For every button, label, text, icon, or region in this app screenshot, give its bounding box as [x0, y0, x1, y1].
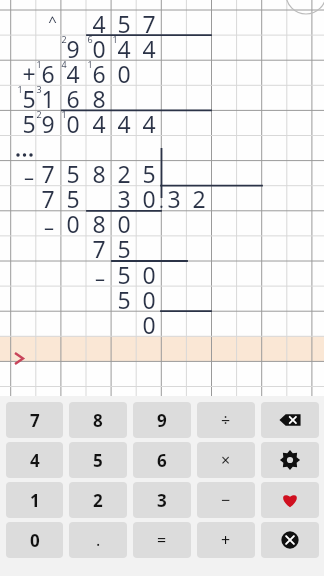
button[interactable]: ÷: [197, 402, 255, 438]
staticText: –: [24, 164, 34, 191]
staticText: 2: [117, 158, 131, 188]
button[interactable]: Settings: [261, 442, 319, 478]
staticText: 2: [36, 108, 42, 120]
staticText: +: [221, 529, 231, 551]
staticText: 4: [117, 33, 131, 63]
staticText: 6: [92, 58, 106, 88]
staticText: 4: [30, 449, 40, 472]
staticText: 3: [167, 183, 181, 213]
button[interactable]: 6: [133, 442, 191, 478]
staticText: =: [157, 529, 167, 551]
staticText: 1: [36, 58, 42, 70]
button[interactable]: Close keyboard: [261, 522, 319, 558]
staticText: 7: [30, 409, 40, 432]
button[interactable]: More options: [14, 147, 34, 163]
staticText: 5: [66, 183, 80, 213]
staticText: 0: [142, 183, 156, 213]
staticText: 6: [157, 449, 167, 472]
button[interactable]: 2: [69, 482, 127, 518]
staticText: 2: [93, 489, 103, 512]
staticText: 8: [92, 158, 106, 188]
button[interactable]: =: [133, 522, 191, 558]
staticText: 6: [41, 58, 55, 88]
staticText: 4: [61, 58, 67, 70]
button[interactable]: 8: [69, 402, 127, 438]
staticText: 2: [61, 33, 67, 45]
staticText: 0: [117, 58, 131, 88]
staticText: 0: [117, 208, 131, 238]
staticText: ^: [48, 11, 57, 31]
button[interactable]: .: [69, 522, 127, 558]
staticText: 3: [36, 83, 42, 95]
staticText: 1: [61, 108, 67, 120]
staticText: 1: [41, 83, 55, 113]
staticText: 0: [30, 529, 40, 552]
staticText: 8: [92, 208, 106, 238]
button[interactable]: 9: [133, 402, 191, 438]
staticText: 4: [66, 58, 80, 88]
staticText: 5: [22, 83, 36, 113]
staticText: 3: [117, 183, 131, 213]
staticText: 5: [22, 108, 36, 138]
staticText: ÷: [221, 409, 231, 431]
staticText: 8: [92, 83, 106, 113]
staticText: 5: [66, 158, 80, 188]
button[interactable]: 5: [69, 442, 127, 478]
staticText: 7: [41, 183, 55, 213]
staticText: 0: [66, 208, 80, 238]
staticText: +: [22, 58, 36, 88]
staticText: 0: [142, 259, 156, 289]
staticText: 0: [142, 284, 156, 314]
staticText: 4: [92, 108, 106, 138]
staticText: 4: [142, 108, 156, 138]
button[interactable]: ×: [197, 442, 255, 478]
button[interactable]: +: [197, 522, 255, 558]
staticText: 1: [87, 58, 93, 70]
staticText: 5: [117, 8, 131, 38]
staticText: 5: [117, 233, 131, 263]
staticText: 3: [157, 489, 167, 512]
staticText: 6: [66, 83, 80, 113]
staticText: 4: [142, 33, 156, 63]
button[interactable]: 7: [6, 402, 63, 438]
staticText: .: [96, 529, 101, 551]
staticText: 0: [142, 309, 156, 339]
staticText: 2: [192, 183, 206, 213]
staticText: 1: [112, 33, 118, 45]
staticText: .: [159, 189, 164, 214]
staticText: 6: [87, 33, 93, 45]
button[interactable]: 0: [6, 522, 63, 558]
staticText: −: [221, 489, 231, 511]
staticText: –: [95, 265, 105, 292]
staticText: 4: [117, 108, 131, 138]
staticText: 7: [142, 8, 156, 38]
button[interactable]: −: [197, 482, 255, 518]
staticText: 5: [117, 259, 131, 289]
staticText: 0: [92, 33, 106, 63]
staticText: ×: [221, 449, 231, 471]
button[interactable]: Favorite: [261, 482, 319, 518]
button[interactable]: 1: [6, 482, 63, 518]
staticText: 1: [30, 489, 40, 512]
staticText: 0: [66, 108, 80, 138]
staticText: 7: [41, 158, 55, 188]
button[interactable]: Backspace: [261, 402, 319, 438]
staticText: 9: [41, 108, 55, 138]
staticText: 1: [17, 83, 23, 95]
staticText: –: [44, 214, 54, 241]
staticText: 5: [117, 284, 131, 314]
staticText: 8: [93, 409, 103, 432]
staticText: 9: [66, 33, 80, 63]
staticText: 7: [92, 233, 106, 263]
staticText: 5: [142, 158, 156, 188]
staticText: 4: [92, 8, 106, 38]
staticText: 9: [157, 409, 167, 432]
button[interactable]: Cursor: [12, 350, 28, 366]
button[interactable]: 4: [6, 442, 63, 478]
button[interactable]: 3: [133, 482, 191, 518]
staticText: 5: [93, 449, 103, 472]
